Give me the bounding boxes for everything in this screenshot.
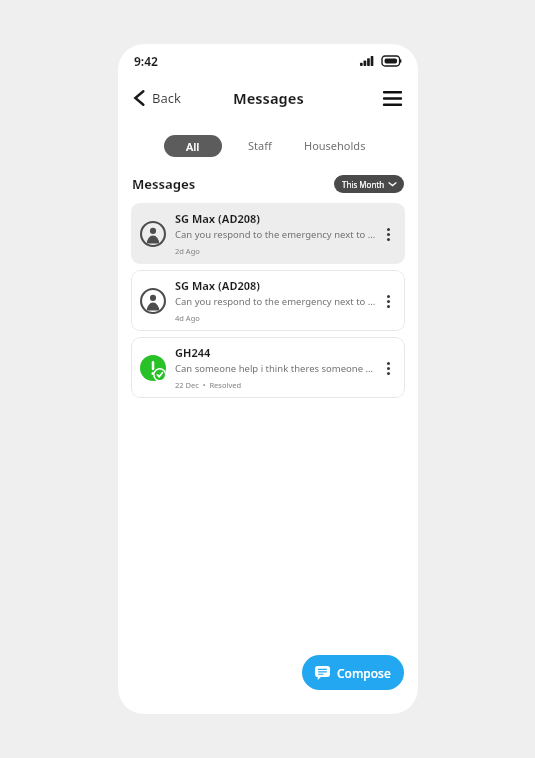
button[interactable]: Households	[298, 134, 372, 157]
staticText: This Month	[342, 179, 385, 190]
button[interactable]: SG Max (AD208)	[131, 270, 405, 331]
staticText: 2d Ago	[175, 246, 200, 256]
staticText: Messages	[233, 88, 304, 108]
staticText: Compose	[337, 665, 391, 681]
button[interactable]: SG Max (AD208)	[131, 203, 405, 264]
button[interactable]: All	[164, 135, 222, 157]
button[interactable]: Menu	[378, 84, 406, 112]
staticText: Staff	[248, 138, 272, 153]
staticText: Back	[152, 89, 181, 107]
staticText: 4d Ago	[175, 313, 200, 323]
button[interactable]: More options	[377, 223, 399, 245]
staticText: SG Max (AD208)	[175, 278, 261, 293]
staticText: 22 Dec • Resolved	[175, 380, 242, 390]
staticText: Can you respond to the emergency next to…	[175, 295, 377, 308]
staticText: 9:42	[134, 53, 158, 69]
button[interactable]: More options	[377, 290, 399, 312]
staticText: SG Max (AD208)	[175, 211, 261, 226]
button[interactable]: More options	[377, 357, 399, 379]
button[interactable]: Compose	[302, 655, 404, 690]
staticText: GH244	[175, 345, 211, 360]
staticText: Can you respond to the emergency next to…	[175, 228, 377, 241]
staticText: All	[186, 139, 200, 154]
button[interactable]: This Month	[334, 175, 404, 193]
button[interactable]: GH244	[131, 337, 405, 398]
staticText: Messages	[132, 175, 196, 193]
button[interactable]: Staff	[242, 134, 278, 157]
staticText: Can someone help i think theres someone …	[175, 362, 377, 375]
button[interactable]: Back	[130, 85, 185, 111]
staticText: Households	[304, 138, 366, 153]
